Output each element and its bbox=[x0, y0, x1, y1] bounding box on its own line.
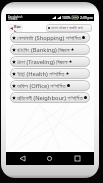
button[interactable]: Recent apps bbox=[72, 153, 83, 164]
staticText: কেনাকাটা (Shopping) সম্পর্কিত bbox=[17, 34, 81, 42]
staticText: Bangladesh Teletalk bbox=[8, 15, 23, 21]
staticText: Back bbox=[14, 24, 23, 32]
button[interactable]: Home bbox=[44, 153, 55, 164]
staticText: স্বাস্থ্য (Health) সম্পর্কিত bbox=[17, 70, 65, 78]
staticText: ব্যাংকিং (Banking) বিষয়ক bbox=[17, 46, 70, 54]
staticText: 100% bbox=[62, 15, 71, 20]
button[interactable]: বাংলা ব্যাকরণ জরুরি কথা bbox=[46, 24, 92, 32]
button[interactable]: প্রতিবেশী (Neighbour) সম্পর্কিত bbox=[10, 92, 90, 103]
button[interactable]: স্বাস্থ্য (Health) সম্পর্কিত bbox=[10, 68, 90, 79]
staticText: বাংলা ব্যাকরণ জরুরি কথা bbox=[51, 25, 83, 31]
button[interactable]: ভ্রমণ (Traveling) বিষয়ক bbox=[10, 56, 90, 67]
button[interactable]: কেনাকাটা (Shopping) সম্পর্কিত bbox=[10, 32, 90, 43]
button[interactable]: Back bbox=[8, 24, 23, 32]
staticText: অফিস (Office) সম্পর্কিত bbox=[17, 82, 66, 90]
button[interactable]: অফিস (Office) সম্পর্কিত bbox=[10, 80, 90, 91]
button[interactable]: ব্যাংকিং (Banking) বিষয়ক bbox=[10, 44, 90, 55]
staticText: ভ্রমণ (Traveling) বিষয়ক bbox=[17, 58, 68, 66]
staticText: 2:39 pm bbox=[80, 15, 93, 20]
staticText: প্রতিবেশী (Neighbour) সম্পর্কিত bbox=[17, 94, 83, 102]
button[interactable]: Back bbox=[17, 153, 28, 164]
